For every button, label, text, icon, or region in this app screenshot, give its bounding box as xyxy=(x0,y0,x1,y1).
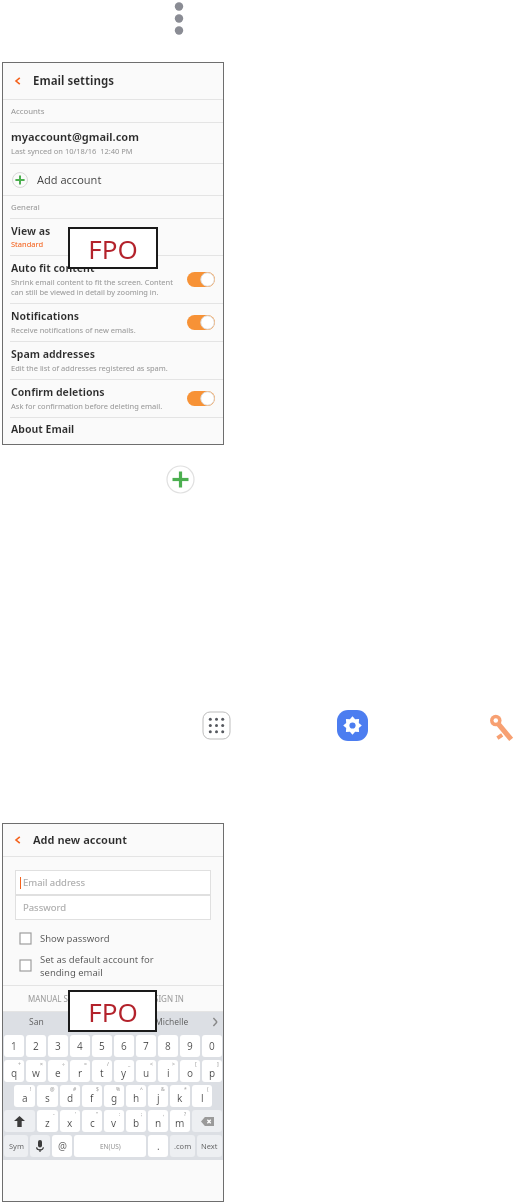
staticText: 8 xyxy=(165,1039,171,1053)
button[interactable]: Back xyxy=(11,74,25,88)
button[interactable]: ' xyxy=(60,1110,80,1132)
button[interactable]: ] xyxy=(202,1060,222,1082)
button[interactable]: 6 xyxy=(114,1035,134,1057)
button[interactable]: 2 xyxy=(26,1035,46,1057)
staticText: Next xyxy=(201,1141,218,1151)
staticText: * xyxy=(184,1086,187,1093)
staticText: < xyxy=(150,1061,153,1068)
button[interactable]: Back xyxy=(2,823,224,856)
staticText: Set as default account for sending email xyxy=(40,953,154,979)
button[interactable]: = xyxy=(70,1060,90,1082)
button[interactable]: Back xyxy=(11,833,25,847)
button[interactable]: Add xyxy=(166,465,195,494)
button[interactable]: & xyxy=(148,1085,168,1107)
button[interactable]: Email address xyxy=(15,870,211,895)
button[interactable]: Next xyxy=(197,1135,222,1157)
staticText: d xyxy=(67,1091,74,1105)
button[interactable]: $ xyxy=(82,1085,102,1107)
button[interactable]: 0 xyxy=(202,1035,222,1057)
button[interactable]: ; xyxy=(126,1110,146,1132)
button[interactable]: * xyxy=(170,1085,190,1107)
button[interactable]: The xyxy=(70,1012,138,1032)
button[interactable]: Auto fit content xyxy=(2,256,224,303)
button[interactable]: - xyxy=(37,1110,58,1132)
button[interactable]: More options xyxy=(171,0,187,42)
button[interactable]: ÷ xyxy=(48,1060,68,1082)
staticText: m xyxy=(175,1116,185,1130)
button[interactable]: About Email xyxy=(2,418,224,440)
button[interactable]: 3 xyxy=(48,1035,68,1057)
button[interactable]: ( xyxy=(192,1085,212,1107)
button[interactable]: ! xyxy=(14,1085,35,1107)
button[interactable]: " xyxy=(82,1110,102,1132)
button[interactable]: Show password xyxy=(2,926,224,950)
staticText: Add account xyxy=(37,172,102,187)
button[interactable]: San xyxy=(2,1012,70,1032)
button[interactable]: / xyxy=(92,1060,112,1082)
staticText: ] xyxy=(217,1061,219,1068)
button[interactable]: Backspace xyxy=(192,1110,222,1132)
staticText: = xyxy=(84,1061,87,1068)
staticText: 1 xyxy=(11,1039,17,1053)
button[interactable]: More suggestions xyxy=(206,1012,224,1032)
button[interactable]: × xyxy=(26,1060,46,1082)
button[interactable]: EN(US) xyxy=(74,1135,146,1157)
button[interactable]: 4 xyxy=(70,1035,90,1057)
button[interactable]: ? xyxy=(170,1110,190,1132)
button[interactable]: Back xyxy=(2,62,224,99)
button[interactable]: Shift xyxy=(4,1110,35,1132)
button[interactable]: Settings xyxy=(337,710,368,741)
button[interactable]: Spam addresses xyxy=(2,342,224,379)
button[interactable]: SIGN IN xyxy=(113,986,224,1011)
button[interactable]: @ xyxy=(52,1135,72,1157)
button[interactable]: ^ xyxy=(126,1085,146,1107)
staticText: 4 xyxy=(77,1039,83,1053)
staticText: x xyxy=(67,1116,73,1130)
staticText: ? xyxy=(184,1111,187,1118)
button[interactable]: < xyxy=(136,1060,156,1082)
button[interactable]: myaccount@gmail.com xyxy=(2,123,224,163)
button[interactable]: Sym xyxy=(4,1135,28,1157)
button[interactable]: View as xyxy=(2,219,224,255)
button[interactable]: 7 xyxy=(136,1035,156,1057)
staticText: u xyxy=(143,1066,150,1080)
button[interactable]: # xyxy=(60,1085,80,1107)
button[interactable]: 8 xyxy=(158,1035,178,1057)
staticText: e xyxy=(55,1066,61,1080)
button[interactable]: _ xyxy=(114,1060,134,1082)
button[interactable]: % xyxy=(104,1085,124,1107)
button[interactable]: Password xyxy=(483,710,515,742)
button[interactable]: Voice input xyxy=(30,1135,50,1157)
button[interactable]: Apps xyxy=(203,712,230,739)
staticText: z xyxy=(45,1116,50,1130)
button[interactable]: .com xyxy=(170,1135,195,1157)
button[interactable]: [ xyxy=(180,1060,200,1082)
button[interactable]: + xyxy=(4,1060,24,1082)
button[interactable]: > xyxy=(158,1060,178,1082)
button[interactable]: : xyxy=(104,1110,124,1132)
button[interactable]: Password xyxy=(15,895,211,920)
button[interactable]: Set as default account for sending email xyxy=(2,950,224,981)
button[interactable]: , xyxy=(148,1110,168,1132)
staticText: f xyxy=(90,1091,94,1105)
staticText: FPO xyxy=(88,994,138,1029)
button[interactable]: 9 xyxy=(180,1035,200,1057)
staticText: g xyxy=(111,1091,118,1105)
button[interactable]: . xyxy=(148,1135,168,1157)
button[interactable]: Michelle xyxy=(138,1012,206,1032)
button[interactable]: 1 xyxy=(4,1035,24,1057)
staticText: [ xyxy=(195,1061,197,1068)
button[interactable]: Add account xyxy=(2,164,224,195)
button[interactable]: 5 xyxy=(92,1035,112,1057)
button[interactable]: MANUAL SETUP xyxy=(2,986,113,1011)
staticText: Accounts xyxy=(11,106,45,117)
staticText: + xyxy=(18,1061,21,1068)
button[interactable]: Confirm deletions xyxy=(2,380,224,417)
button[interactable]: Notifications xyxy=(2,304,224,341)
staticText: Sym xyxy=(9,1141,24,1151)
button[interactable]: @ xyxy=(37,1085,58,1107)
staticText: 5 xyxy=(99,1039,105,1053)
staticText: o xyxy=(187,1066,194,1080)
staticText: Password xyxy=(23,901,66,914)
staticText: Spam addresses xyxy=(11,347,96,361)
